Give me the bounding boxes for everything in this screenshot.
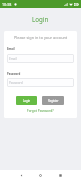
staticText: 10:38 — [2, 2, 12, 7]
button[interactable]: Recents — [56, 171, 65, 180]
staticText: Email — [9, 57, 17, 61]
button[interactable]: Forgot Password? — [27, 109, 54, 113]
button[interactable]: Login — [16, 96, 37, 105]
button[interactable]: Email — [7, 54, 74, 63]
staticText: Register — [48, 99, 59, 103]
staticText: Password — [9, 81, 23, 85]
button[interactable]: Back — [17, 171, 26, 180]
button[interactable]: Password — [7, 78, 74, 87]
staticText: Please sign in to your account — [14, 35, 68, 40]
staticText: Login — [32, 15, 49, 23]
button[interactable]: Register — [42, 96, 64, 105]
staticText: Password — [7, 72, 21, 76]
button[interactable]: Home — [36, 171, 45, 180]
staticText: Login — [23, 99, 31, 103]
staticText: Email — [7, 47, 15, 51]
